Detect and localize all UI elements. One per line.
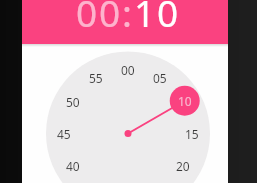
button[interactable]: 20 — [169, 157, 197, 175]
button[interactable]: 40 — [59, 157, 87, 175]
button[interactable]: 05 — [146, 69, 174, 87]
staticText: 15 — [185, 126, 199, 142]
staticText: 00 — [121, 62, 135, 78]
staticText: 45 — [57, 126, 71, 142]
staticText: 55 — [89, 70, 103, 86]
staticText: 05 — [153, 70, 167, 86]
button[interactable]: 10 — [134, 0, 180, 31]
button[interactable]: 50 — [59, 93, 87, 111]
staticText: 50 — [66, 94, 80, 110]
staticText: 20 — [176, 158, 190, 174]
button[interactable]: 10 — [171, 92, 199, 110]
button[interactable]: 00 — [114, 61, 142, 79]
button[interactable]: 45 — [50, 125, 78, 143]
staticText: 10 — [178, 93, 192, 109]
button[interactable]: 55 — [82, 69, 110, 87]
button[interactable]: 15 — [178, 125, 206, 143]
staticText: 40 — [66, 158, 80, 174]
button[interactable]: 00: — [76, 0, 134, 31]
